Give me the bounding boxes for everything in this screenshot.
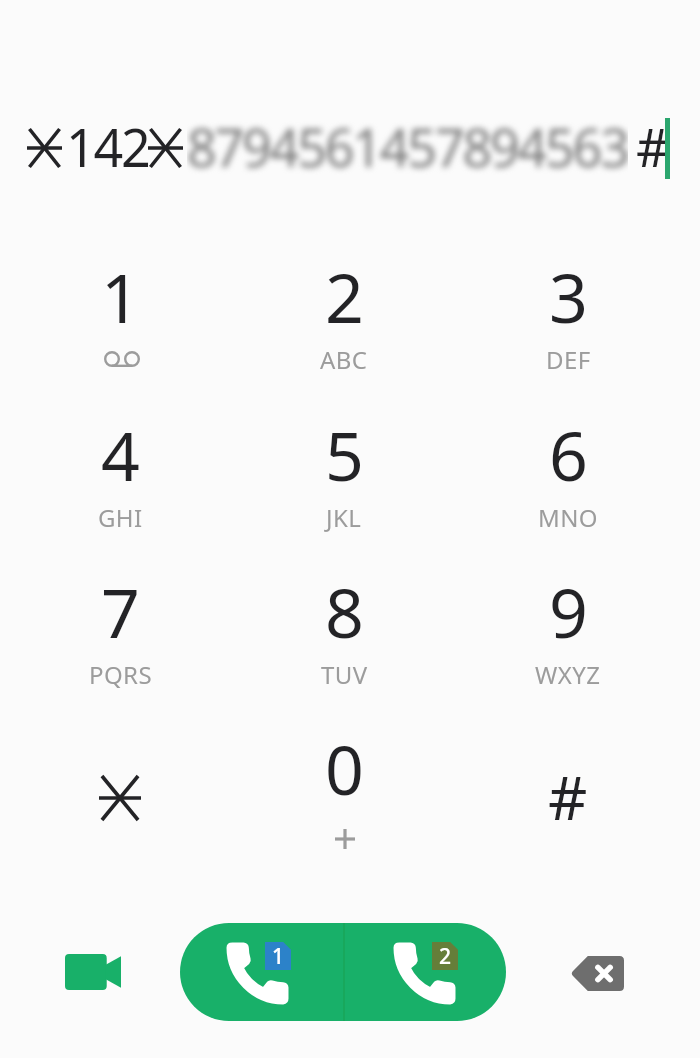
button[interactable]: 7 (8, 553, 232, 709)
button[interactable] (8, 710, 232, 866)
staticText: TUV (321, 658, 368, 691)
button[interactable]: 9 (456, 553, 680, 709)
staticText: 4 (101, 408, 140, 496)
button[interactable]: Call with SIM 2 (343, 923, 506, 1021)
button[interactable]: 3 (456, 238, 680, 394)
button[interactable]: 0 (232, 710, 456, 866)
staticText: 1 (272, 942, 285, 970)
button[interactable]: 5 (232, 396, 456, 552)
staticText: 6 (549, 408, 588, 496)
button[interactable]: # (456, 710, 680, 866)
staticText: PQRS (89, 658, 152, 691)
staticText: 3 (549, 250, 588, 338)
staticText: WXYZ (535, 658, 601, 691)
staticText: 5 (325, 408, 364, 496)
button[interactable]: Backspace (542, 932, 652, 1014)
staticText: # (548, 755, 588, 834)
staticText: 142 (66, 111, 149, 177)
button[interactable]: 8 (232, 553, 456, 709)
button[interactable]: 1 (8, 238, 232, 394)
staticText: MNO (538, 501, 598, 534)
staticText: JKL (326, 501, 362, 534)
button[interactable]: 6 (456, 396, 680, 552)
button[interactable]: Call with SIM 1 (180, 923, 343, 1021)
staticText: 2 (325, 250, 364, 338)
button[interactable]: 4 (8, 396, 232, 552)
staticText: 9 (549, 565, 588, 653)
staticText: 1 (101, 250, 140, 338)
staticText: 8 (325, 565, 364, 653)
button[interactable]: 2 (232, 238, 456, 394)
button[interactable]: Video call (38, 930, 148, 1014)
staticText: 0 (325, 722, 364, 810)
staticText: ABC (320, 343, 368, 376)
staticText: 2 (439, 942, 452, 970)
staticText: 7 (101, 565, 140, 653)
staticText: # (636, 111, 668, 177)
staticText: 8794561457894563 (187, 111, 628, 177)
staticText: DEF (546, 343, 591, 376)
staticText: GHI (98, 501, 143, 534)
